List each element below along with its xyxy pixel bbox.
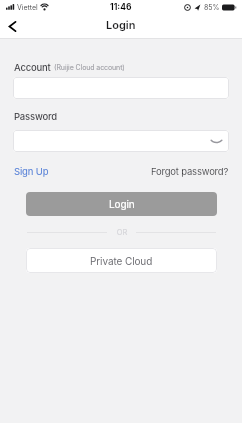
staticText: (Ruijie Cloud account) <box>54 63 125 71</box>
staticText: Password <box>14 111 57 122</box>
button[interactable]: Forgot password? <box>151 166 229 177</box>
staticText: Login <box>109 198 135 210</box>
staticText: Account <box>14 62 51 73</box>
button[interactable]: Sign Up <box>14 166 49 177</box>
staticText: 11:46 <box>110 2 132 12</box>
button[interactable] <box>13 130 229 152</box>
button[interactable] <box>4 18 20 34</box>
staticText: Login <box>106 18 136 31</box>
staticText: Viettel <box>17 3 38 11</box>
button[interactable]: Private Cloud <box>26 248 217 273</box>
button[interactable]: Login <box>26 192 217 216</box>
staticText: OR <box>113 228 131 237</box>
staticText: 85% <box>204 3 220 11</box>
staticText: Private Cloud <box>90 255 153 267</box>
button[interactable] <box>13 77 229 99</box>
